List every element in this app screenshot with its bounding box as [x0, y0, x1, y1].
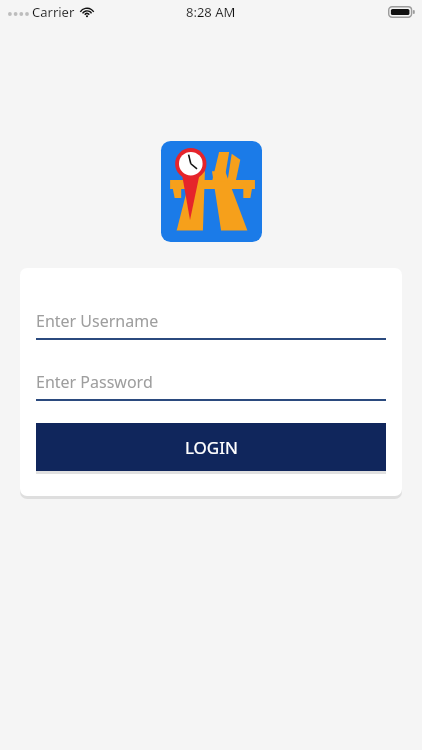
button[interactable]: Enter Username	[36, 308, 386, 340]
staticText: Enter Username	[36, 310, 159, 332]
staticText: LOGIN	[185, 436, 238, 459]
staticText: Enter Password	[36, 371, 153, 393]
other: App logo	[161, 141, 262, 242]
staticText: Carrier	[32, 3, 75, 21]
button[interactable]: Enter Password	[36, 369, 386, 401]
button[interactable]: LOGIN	[36, 423, 386, 471]
staticText: 8:28 AM	[186, 3, 236, 21]
